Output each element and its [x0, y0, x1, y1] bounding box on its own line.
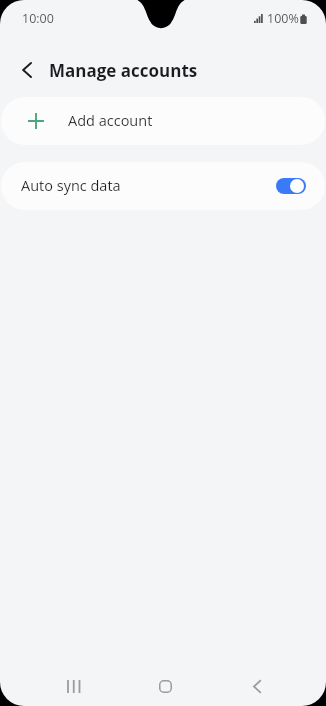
button[interactable]: Home: [143, 664, 188, 706]
button[interactable]: Navigate up: [6, 49, 48, 91]
button[interactable]: Back: [234, 664, 279, 706]
staticText: 100%: [267, 10, 299, 27]
button[interactable]: Auto sync data: [1, 162, 325, 210]
staticText: 10:00: [22, 10, 54, 27]
staticText: Auto sync data: [21, 176, 121, 196]
button[interactable]: Add account: [1, 97, 325, 145]
staticText: Add account: [68, 111, 153, 131]
button[interactable]: Recents: [51, 664, 96, 706]
staticText: Manage accounts: [49, 59, 198, 82]
